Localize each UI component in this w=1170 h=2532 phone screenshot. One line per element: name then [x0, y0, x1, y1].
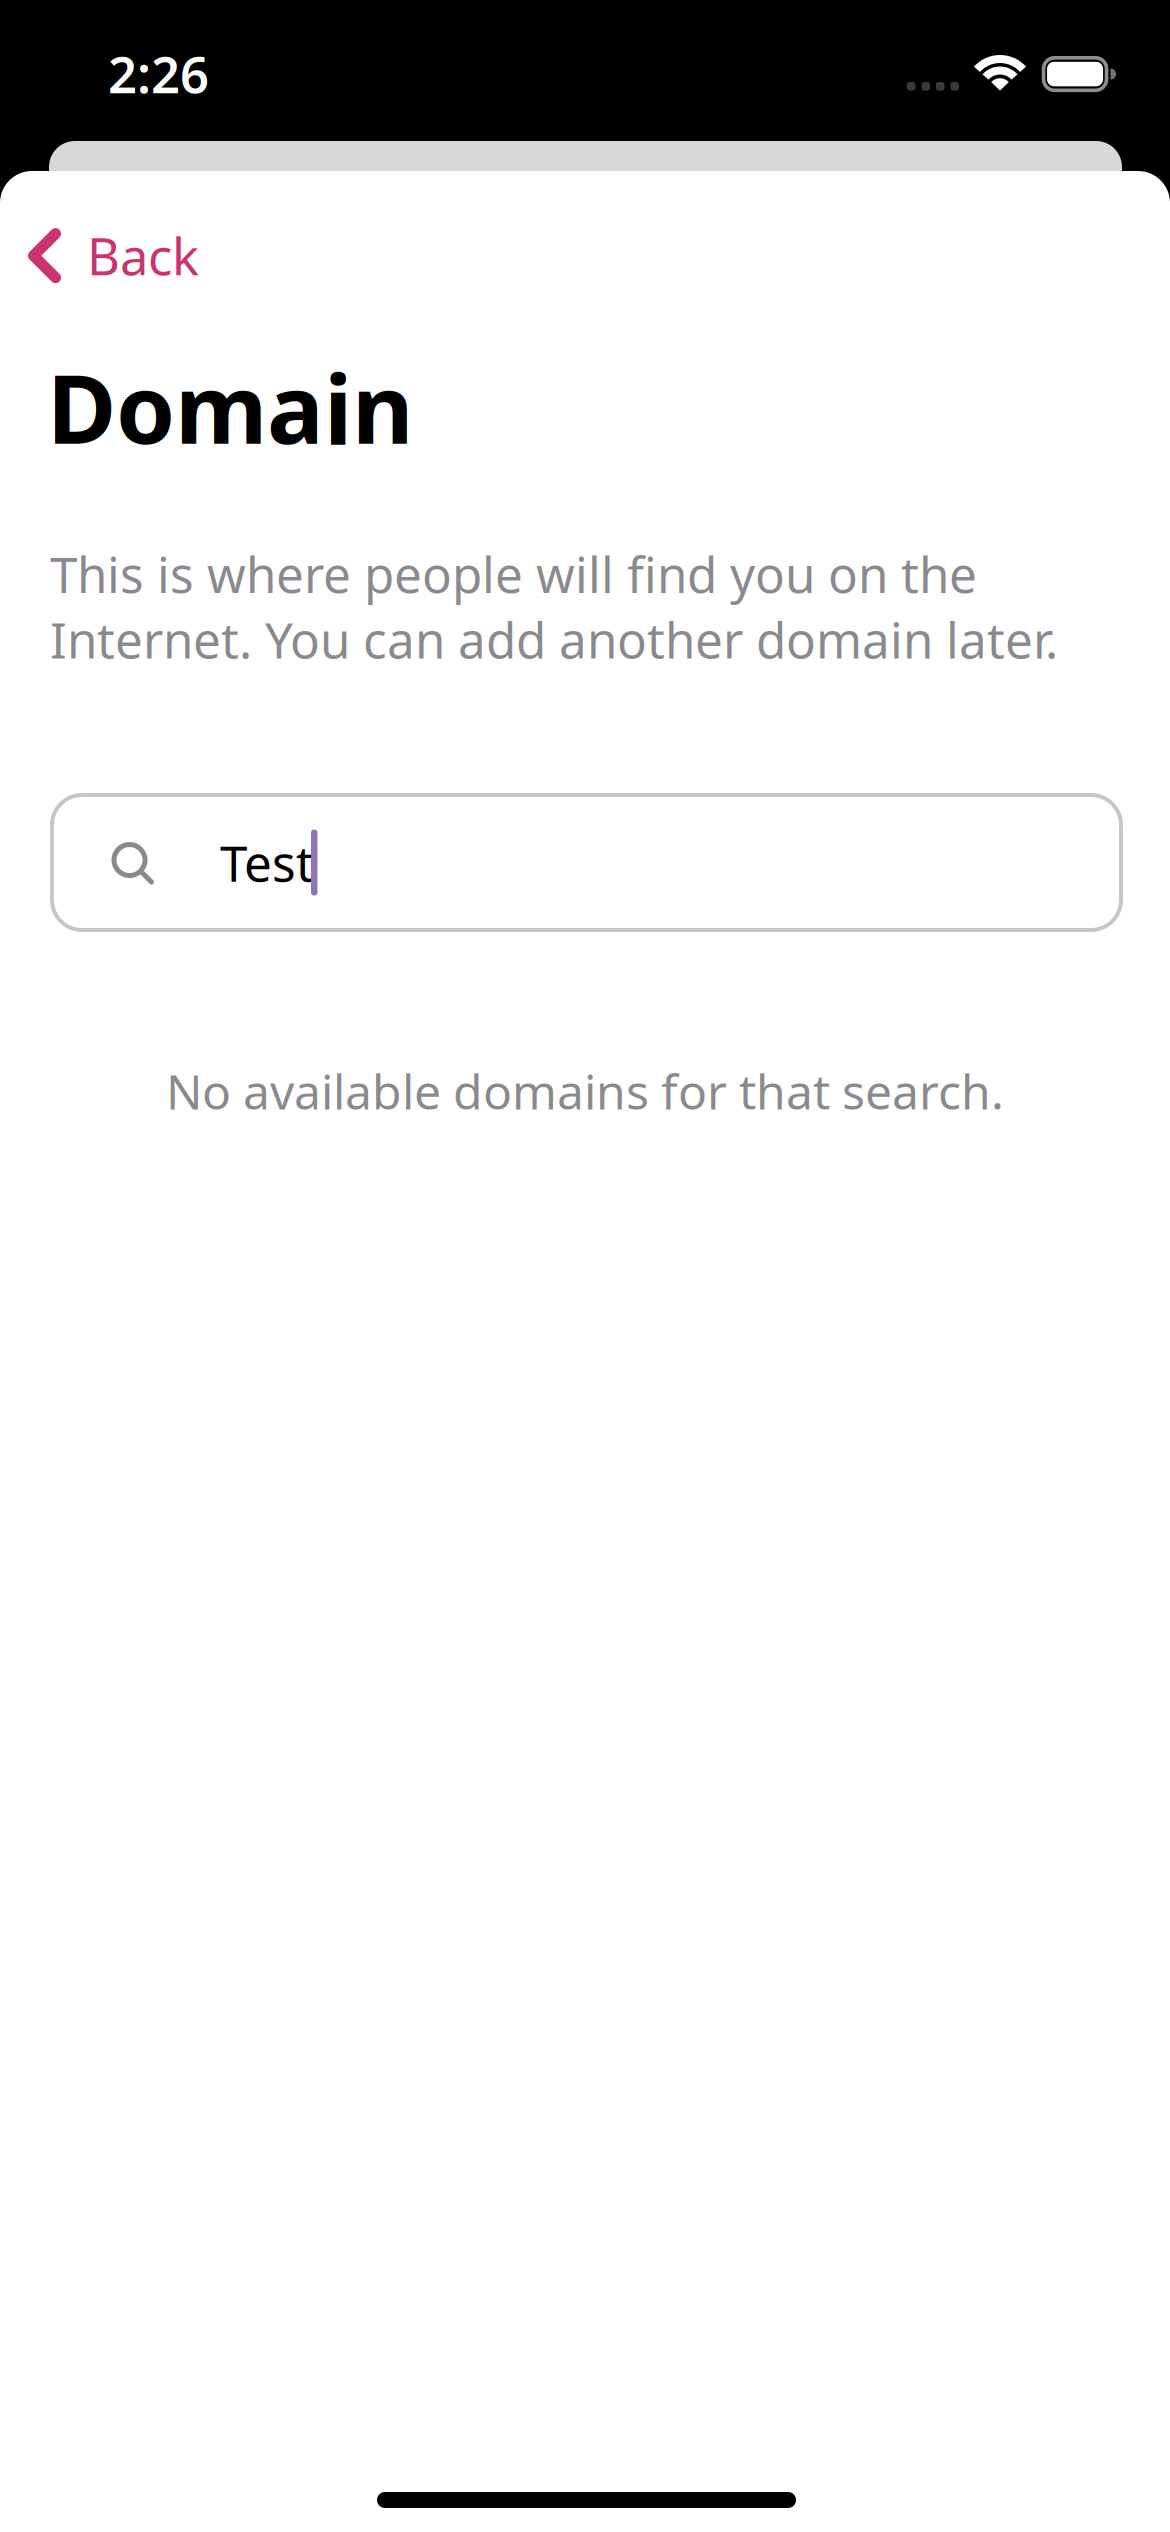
button[interactable]: Search domains — [52, 795, 1121, 930]
button[interactable]: Back — [0, 208, 218, 303]
staticText: 2:26 — [108, 40, 209, 107]
staticText: Back — [87, 222, 199, 289]
staticText: Domain — [47, 344, 414, 470]
staticText: This is where people will find you on th… — [50, 541, 1058, 672]
staticText: No available domains for that search. — [166, 1059, 1004, 1123]
staticText: Test — [220, 830, 314, 895]
